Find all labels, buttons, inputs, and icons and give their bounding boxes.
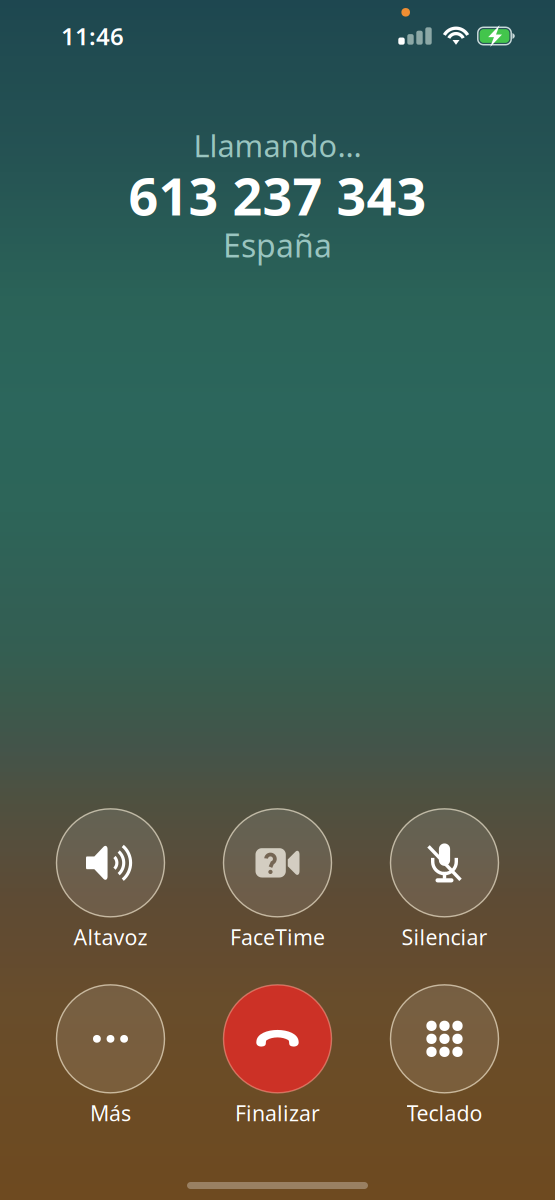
- button[interactable]: Altavoz: [27, 804, 194, 956]
- button[interactable]: Teclado: [361, 980, 528, 1132]
- staticText: Llamando...: [193, 125, 361, 166]
- staticText: Silenciar: [401, 923, 487, 951]
- staticText: Teclado: [406, 1099, 482, 1127]
- staticText: Más: [90, 1099, 131, 1127]
- staticText: 613 237 343: [128, 161, 426, 230]
- button[interactable]: FaceTime: [194, 804, 361, 956]
- button[interactable]: Finalizar llamada: [194, 980, 361, 1132]
- staticText: Finalizar: [235, 1099, 320, 1127]
- staticText: Altavoz: [73, 923, 147, 951]
- staticText: 11:46: [61, 20, 124, 52]
- button[interactable]: Más: [27, 980, 194, 1132]
- staticText: FaceTime: [230, 923, 325, 951]
- staticText: España: [223, 224, 332, 266]
- button[interactable]: Silenciar: [361, 804, 528, 956]
